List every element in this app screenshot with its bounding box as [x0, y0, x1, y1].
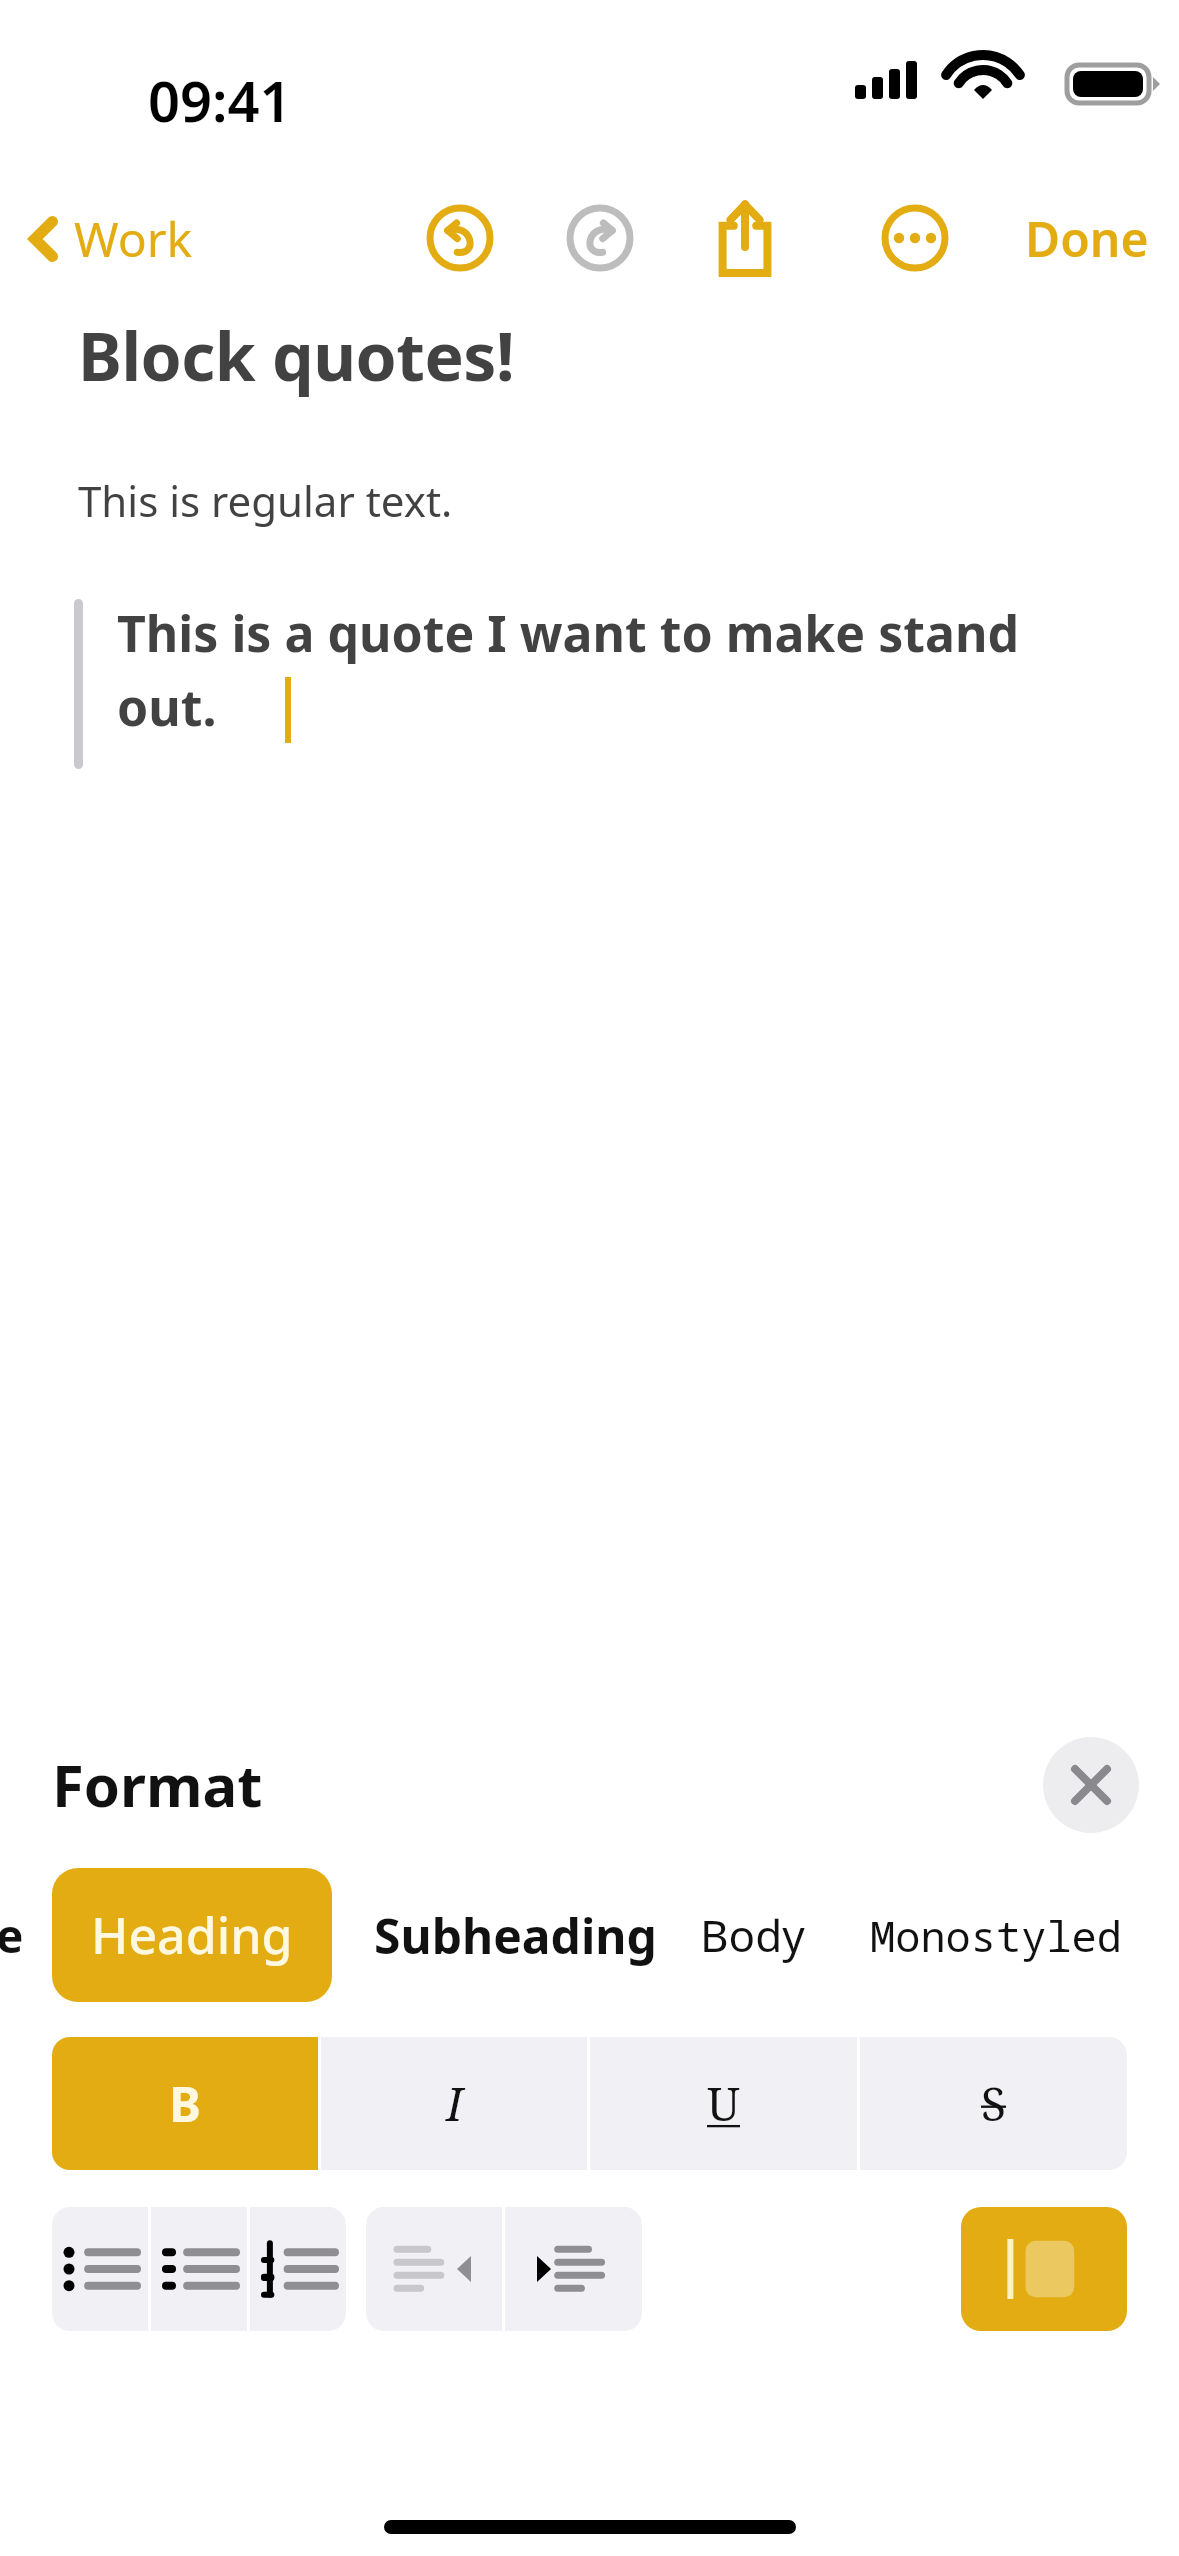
- button[interactable]: Numbered list: [250, 2207, 346, 2331]
- button[interactable]: Done: [1015, 196, 1159, 281]
- button[interactable]: Redo: [545, 183, 655, 293]
- button[interactable]: U: [590, 2037, 857, 2170]
- staticText: This is a quote I want to make stand out…: [117, 599, 1109, 741]
- button[interactable]: More options: [860, 183, 970, 293]
- staticText: Monostyled: [870, 1907, 1123, 1964]
- staticText: Heading: [91, 1901, 293, 1969]
- staticText: Format: [52, 1745, 263, 1824]
- staticText: I: [446, 2072, 463, 2135]
- button[interactable]: Monostyled: [862, 1889, 1131, 1982]
- staticText: Body: [700, 1905, 805, 1965]
- button[interactable]: Heading: [52, 1868, 332, 2002]
- button[interactable]: Increase indent: [505, 2207, 642, 2331]
- staticText: Block quotes!: [78, 310, 515, 400]
- button[interactable]: Share: [690, 183, 800, 293]
- staticText: Subheading: [374, 1903, 657, 1968]
- button[interactable]: Undo: [405, 183, 515, 293]
- staticText: U: [707, 2072, 740, 2135]
- button[interactable]: I: [321, 2037, 587, 2170]
- staticText: S: [981, 2072, 1007, 2135]
- staticText: e: [0, 1904, 24, 1967]
- button[interactable]: Bulleted list: [52, 2207, 148, 2331]
- staticText: Done: [1025, 206, 1149, 271]
- button[interactable]: Body: [692, 1887, 813, 1983]
- button[interactable]: Block quote: [961, 2207, 1127, 2331]
- staticText: B: [169, 2071, 201, 2136]
- staticText: Work: [74, 206, 193, 271]
- button[interactable]: Dashed list: [151, 2207, 247, 2331]
- button[interactable]: B: [52, 2037, 318, 2170]
- staticText: This is regular text.: [78, 472, 453, 529]
- staticText: 09:41: [148, 62, 292, 138]
- button[interactable]: Work: [18, 196, 203, 281]
- button[interactable]: Subheading: [366, 1885, 665, 1986]
- button[interactable]: Decrease indent: [366, 2207, 502, 2331]
- button[interactable]: Close: [1043, 1737, 1139, 1833]
- button[interactable]: S: [860, 2037, 1127, 2170]
